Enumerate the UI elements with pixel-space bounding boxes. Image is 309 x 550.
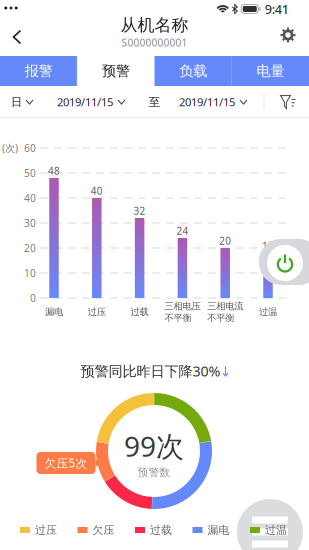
staticText: S0000000001	[121, 36, 187, 50]
button[interactable]: 2019/11/15	[48, 86, 134, 118]
staticText: 预警	[102, 62, 130, 80]
staticText: 预警同比昨日下降30%	[80, 361, 220, 381]
staticText: 漏电	[45, 306, 63, 318]
staticText: 2019/11/15	[179, 94, 235, 110]
staticText: 预警数	[137, 466, 170, 479]
button[interactable]: 电量	[232, 56, 309, 86]
staticText: 漏电	[207, 523, 229, 537]
button[interactable]: 报警	[0, 56, 77, 86]
staticText: 18	[262, 239, 274, 253]
staticText: 40	[91, 184, 103, 198]
button[interactable]: Power	[267, 245, 303, 281]
staticText: 2019/11/15	[57, 94, 113, 110]
staticText: 9:41	[265, 0, 289, 18]
staticText: 欠压5次	[44, 455, 87, 471]
staticText: (次)	[2, 141, 18, 155]
staticText: 24	[176, 224, 188, 238]
button[interactable]: 预警	[77, 56, 154, 86]
button[interactable]: Settings	[268, 17, 307, 52]
staticText: 过载	[150, 523, 172, 537]
button[interactable]: Assistive menu	[237, 499, 303, 550]
staticText: 0	[30, 291, 36, 305]
staticText: 负载	[179, 62, 207, 80]
staticText: 三相电压 不平衡	[164, 300, 200, 324]
staticText: 过载	[131, 306, 149, 318]
button[interactable]: 负载	[154, 56, 232, 86]
staticText: 30	[24, 216, 36, 230]
staticText: 从机名称	[120, 14, 188, 36]
staticText: 50	[24, 166, 36, 180]
staticText: 过压	[35, 523, 57, 537]
staticText: 日	[11, 95, 22, 109]
staticText: 欠压	[92, 523, 114, 537]
staticText: 过温	[265, 523, 287, 537]
staticText: 48	[48, 164, 60, 178]
staticText: 至	[148, 95, 160, 109]
staticText: 20	[24, 241, 36, 255]
button[interactable]: Back	[0, 21, 33, 52]
staticText: 三相电流 不平衡	[207, 300, 243, 324]
staticText: 40	[24, 191, 36, 205]
staticText: 10	[24, 266, 36, 280]
staticText: 60	[24, 141, 36, 155]
button[interactable]: 日	[2, 87, 42, 117]
staticText: 过压	[88, 306, 106, 318]
staticText: 99次	[124, 427, 184, 465]
button[interactable]: 2019/11/15	[170, 86, 256, 118]
staticText: 报警	[25, 62, 53, 80]
staticText: 20	[219, 234, 231, 248]
staticText: 32	[134, 204, 146, 218]
staticText: 电量	[256, 62, 284, 80]
button[interactable]: Filter	[269, 87, 306, 116]
staticText: 过温	[259, 306, 277, 318]
